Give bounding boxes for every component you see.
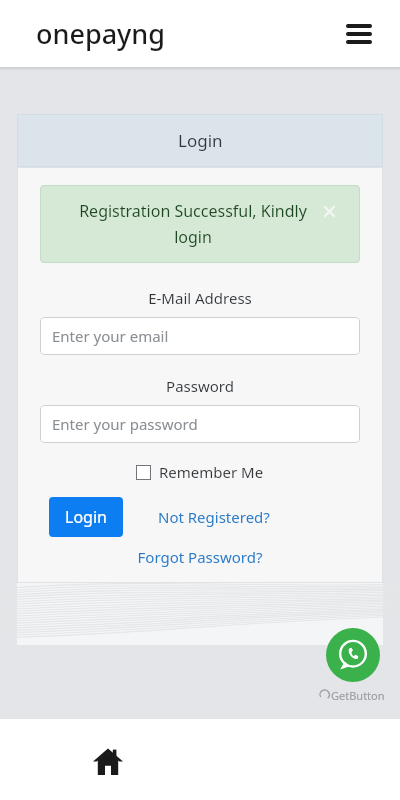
staticText: Enter your email bbox=[52, 326, 169, 346]
button[interactable]: Menu bbox=[342, 17, 376, 51]
button[interactable]: Dismiss bbox=[318, 200, 340, 222]
button[interactable]: Login bbox=[49, 497, 123, 537]
staticText: Login bbox=[65, 506, 107, 528]
staticText: E-Mail Address bbox=[40, 288, 360, 308]
button[interactable]: Remember Me bbox=[136, 462, 264, 482]
staticText: Enter your password bbox=[52, 414, 198, 434]
staticText: Password bbox=[40, 376, 360, 396]
staticText: Registration Successful, Kindly login bbox=[60, 200, 326, 248]
staticText: onepayng bbox=[36, 15, 166, 52]
button[interactable]: Not Registered? bbox=[158, 507, 270, 527]
button[interactable]: Enter your email bbox=[40, 317, 360, 355]
button[interactable]: Home bbox=[86, 739, 130, 783]
staticText: Not Registered? bbox=[158, 507, 270, 527]
button[interactable]: Chat on WhatsApp bbox=[326, 628, 380, 682]
staticText: GetButton bbox=[331, 688, 385, 703]
staticText: Login bbox=[178, 129, 223, 152]
button[interactable]: Enter your password bbox=[40, 405, 360, 443]
staticText: Remember Me bbox=[159, 462, 264, 482]
button[interactable]: Forgot Password? bbox=[40, 547, 360, 567]
